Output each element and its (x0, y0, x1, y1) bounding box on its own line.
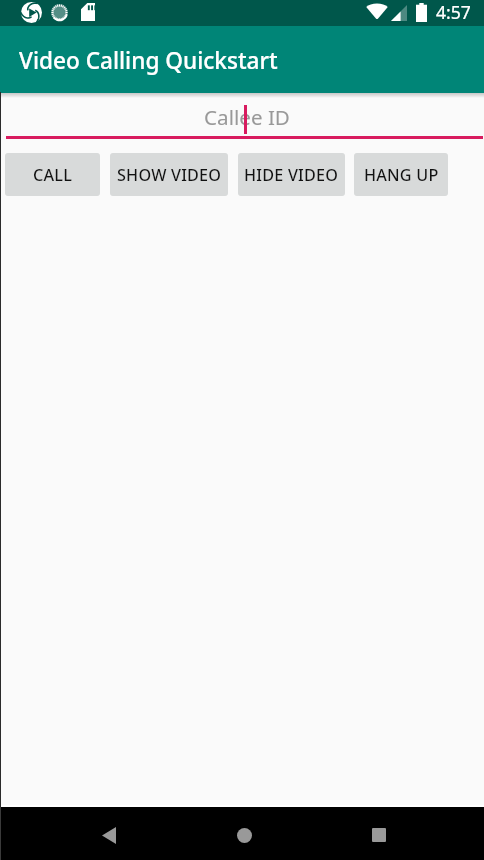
button[interactable]: HIDE VIDEO (238, 153, 345, 196)
button[interactable]: CALL (5, 153, 100, 196)
button[interactable]: HANG UP (354, 153, 448, 196)
staticText: SHOW VIDEO (117, 164, 222, 186)
button[interactable]: Back (83, 809, 135, 860)
staticText: 4:57 (436, 0, 471, 24)
staticText: CALL (33, 164, 72, 186)
button[interactable]: Recent apps (353, 809, 405, 860)
button[interactable]: Home (218, 809, 270, 860)
button[interactable]: Callee ID (6, 103, 483, 136)
button[interactable]: SHOW VIDEO (110, 153, 228, 196)
staticText: HANG UP (364, 164, 439, 186)
staticText: Video Calling Quickstart (19, 45, 278, 76)
staticText: Callee ID (204, 103, 290, 131)
staticText: HIDE VIDEO (244, 164, 339, 186)
